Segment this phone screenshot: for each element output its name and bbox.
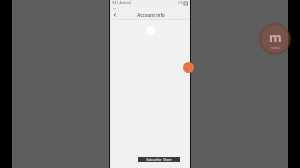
- staticText: m: [269, 28, 282, 46]
- button[interactable]: Subscribe Share: [138, 157, 180, 162]
- button[interactable]: Back: [110, 10, 119, 19]
- staticText: media: [271, 46, 280, 50]
- staticText: 9:41 Android: [112, 1, 131, 5]
- staticText: LTE: [178, 1, 183, 5]
- button[interactable]: Action: [183, 62, 194, 73]
- staticText: Subscribe Share: [146, 158, 172, 162]
- staticText: Account info: [137, 12, 165, 18]
